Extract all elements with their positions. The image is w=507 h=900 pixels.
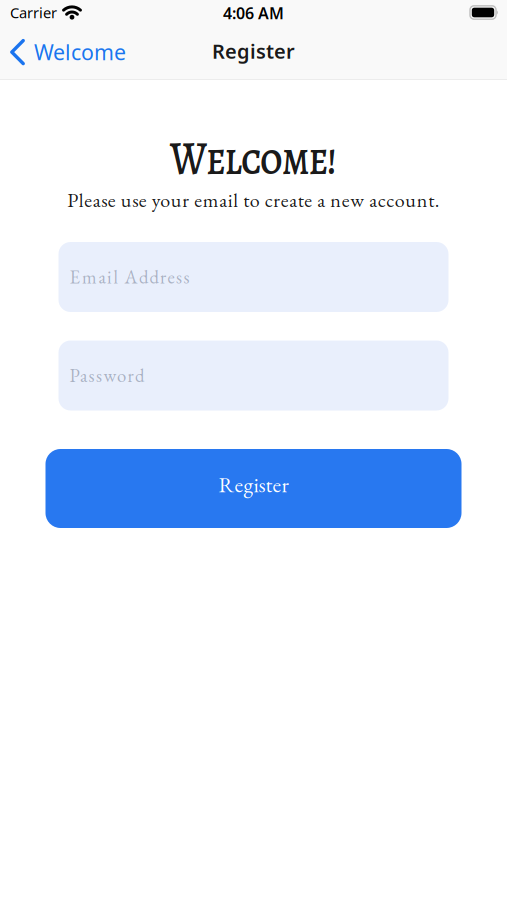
staticText: Register xyxy=(212,38,295,64)
button[interactable]: Password xyxy=(58,340,448,410)
staticText: 4:06 AM xyxy=(223,2,284,24)
button[interactable]: Register xyxy=(45,449,461,528)
button[interactable]: Welcome xyxy=(10,38,126,66)
staticText: Welcome! xyxy=(155,127,352,190)
staticText: Email Address xyxy=(69,265,189,289)
staticText: Register xyxy=(218,470,288,499)
staticText: Password xyxy=(69,363,144,388)
staticText: Please use your email to create a new ac… xyxy=(67,187,440,213)
button[interactable]: Email Address xyxy=(58,242,448,312)
staticText: Carrier xyxy=(10,3,57,22)
staticText: Welcome xyxy=(34,38,126,66)
